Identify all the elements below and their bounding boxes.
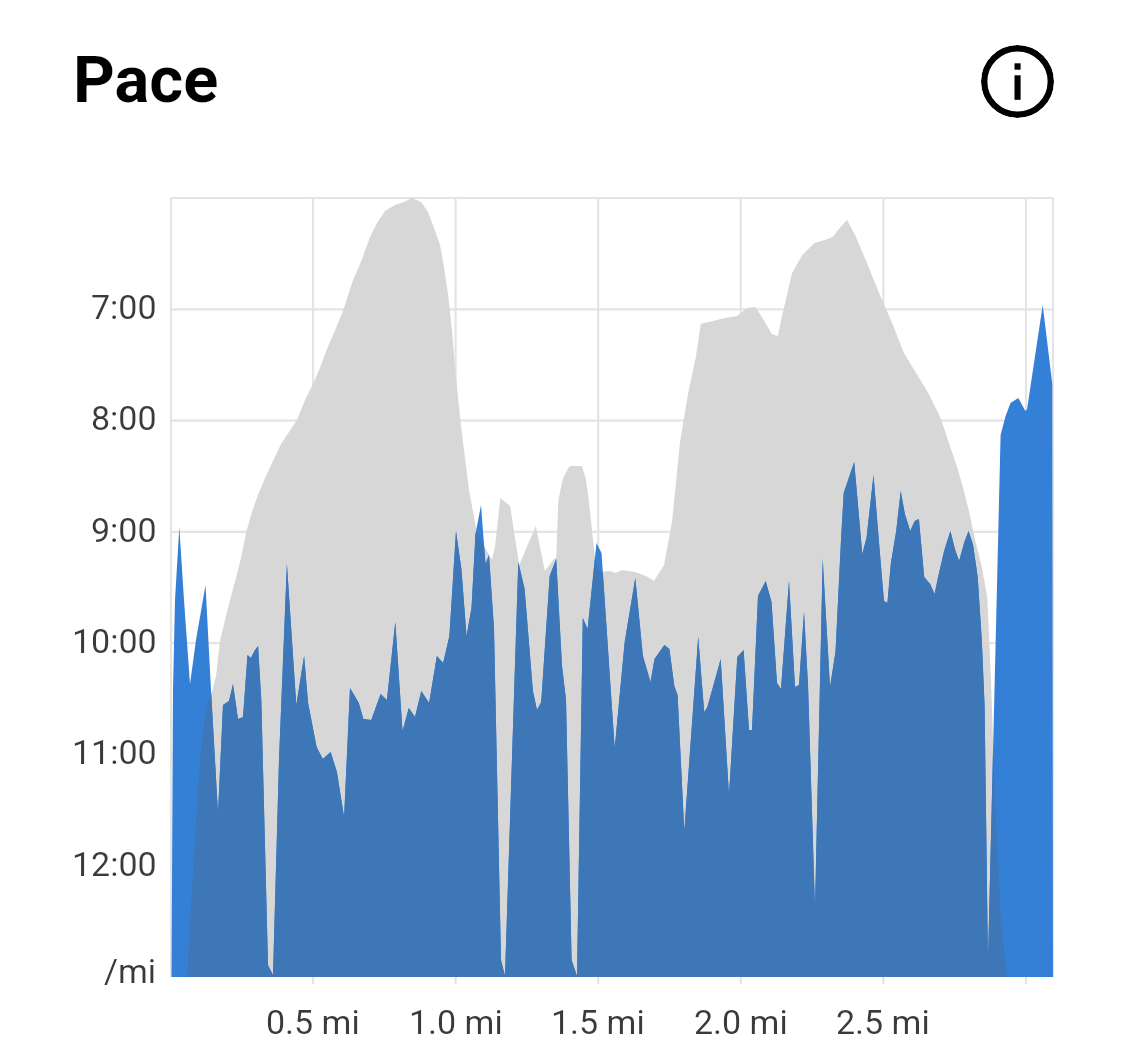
staticText: 2.5 mi [836, 1002, 930, 1042]
button[interactable]: Info [981, 45, 1054, 118]
staticText: 7:00 [91, 287, 157, 327]
staticText: 1.5 mi [551, 1002, 645, 1042]
staticText: 11:00 [72, 732, 157, 772]
staticText: 10:00 [72, 621, 157, 661]
staticText: 8:00 [91, 398, 157, 438]
staticText: 2.0 mi [694, 1002, 788, 1042]
staticText: 0.5 mi [266, 1002, 360, 1042]
staticText: Pace [73, 42, 219, 118]
staticText: /mi [104, 951, 157, 991]
staticText: 1.0 mi [409, 1002, 503, 1042]
staticText: 9:00 [91, 510, 157, 550]
staticText: 12:00 [72, 844, 157, 884]
